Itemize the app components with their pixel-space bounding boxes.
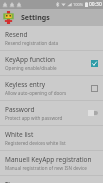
button[interactable]: Keyless entry (0, 76, 103, 100)
staticText: Manual registration of new ISN device (5, 165, 87, 171)
staticText: Allow auto-opening of doors (5, 90, 67, 96)
staticText: Manuell KeyApp registration (5, 155, 92, 164)
staticText: Settings (21, 13, 50, 23)
button[interactable]: White list (0, 126, 103, 150)
button[interactable]: Timer (0, 176, 103, 183)
staticText: Password (5, 105, 35, 114)
staticText: Resend registration data (5, 40, 59, 46)
staticText: KeyApp function (5, 55, 56, 64)
button[interactable]: KeyApp function (0, 51, 103, 75)
button[interactable]: Resend (0, 26, 103, 50)
button[interactable]: Manuell KeyApp registration (0, 151, 103, 175)
button[interactable]: Password (0, 101, 103, 125)
staticText: Registered devices white list (5, 140, 66, 146)
staticText: 100% (73, 2, 84, 7)
button[interactable]: Off (87, 108, 99, 118)
staticText: Keyless entry (5, 80, 46, 89)
button[interactable]: Checked (89, 58, 99, 68)
staticText: Timer (5, 180, 23, 183)
staticText: Protect app with password (5, 115, 63, 121)
staticText: 00:30 (89, 1, 102, 8)
staticText: Resend (5, 30, 28, 39)
staticText: Opening enable/disable (5, 65, 57, 71)
button[interactable]: Unchecked (89, 83, 99, 93)
staticText: White list (5, 130, 34, 139)
